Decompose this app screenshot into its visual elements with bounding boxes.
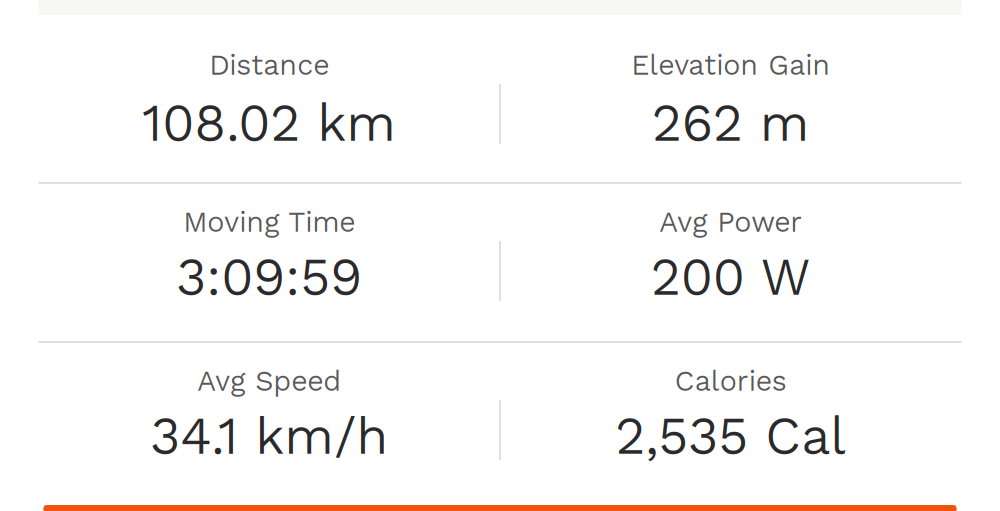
button[interactable]: Primary action [43, 505, 956, 511]
staticText: Calories [675, 364, 787, 398]
staticText: Elevation Gain [631, 48, 830, 82]
staticText: Avg Power [659, 205, 802, 239]
staticText: 200 W [651, 246, 811, 307]
staticText: 108.02 km [142, 92, 396, 153]
staticText: 34.1 km/h [150, 405, 388, 466]
staticText: 3:09:59 [176, 246, 362, 307]
staticText: Avg Speed [197, 364, 341, 398]
staticText: Distance [209, 48, 329, 82]
staticText: 262 m [652, 92, 810, 153]
staticText: Moving Time [183, 205, 355, 239]
staticText: 2,535 Cal [615, 405, 846, 466]
